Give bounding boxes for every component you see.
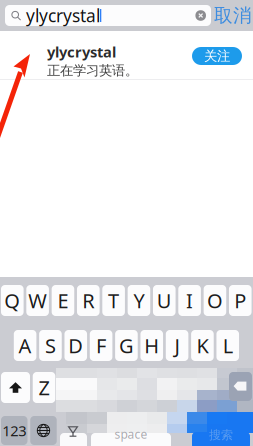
button[interactable]: P	[229, 285, 252, 316]
staticText: D	[68, 332, 83, 359]
staticText: 取消	[214, 4, 252, 27]
staticText: R	[82, 287, 94, 314]
button[interactable]: I	[178, 285, 201, 316]
button[interactable]: L	[216, 330, 239, 361]
button[interactable]: W	[26, 285, 49, 316]
staticText: J	[175, 332, 180, 359]
staticText: S	[45, 332, 56, 359]
button[interactable]: O	[204, 285, 226, 316]
staticText: K	[196, 332, 208, 359]
staticText: Z	[38, 374, 49, 401]
staticText: ylycrystal	[26, 4, 100, 27]
button[interactable]: Shift	[1, 372, 30, 403]
button[interactable]: Next keyboard	[30, 416, 57, 445]
staticText: ylycrystal	[47, 42, 116, 61]
button[interactable]: 123	[1, 416, 27, 445]
staticText: 正在学习英语。	[47, 62, 138, 79]
button[interactable]: T	[102, 285, 125, 316]
staticText: U	[157, 287, 172, 314]
staticText: T	[108, 287, 119, 314]
button[interactable]: J	[166, 330, 188, 361]
staticText: 123	[2, 421, 26, 440]
staticText: A	[19, 332, 32, 359]
staticText: Y	[133, 287, 144, 314]
staticText: space	[114, 426, 147, 442]
staticText: I	[186, 287, 193, 314]
button[interactable]: G	[115, 330, 138, 361]
button[interactable]: 取消	[213, 0, 253, 31]
button[interactable]: H	[140, 330, 163, 361]
staticText: W	[28, 287, 47, 314]
button[interactable]: Z	[33, 372, 55, 403]
staticText: P	[234, 287, 246, 314]
button[interactable]: F	[90, 330, 112, 361]
button[interactable]: S	[39, 330, 62, 361]
button[interactable]: K	[191, 330, 214, 361]
button[interactable]: U	[153, 285, 176, 316]
staticText: G	[119, 332, 134, 359]
staticText: 搜索	[209, 428, 233, 442]
staticText: 关注	[204, 48, 230, 64]
button[interactable]: Q	[1, 285, 24, 316]
staticText: L	[223, 332, 233, 359]
button[interactable]: D	[64, 330, 87, 361]
button[interactable]: Y	[128, 285, 150, 316]
button[interactable]: E	[52, 285, 74, 316]
staticText: E	[57, 287, 68, 314]
staticText: O	[207, 287, 223, 314]
button[interactable]: A	[14, 330, 36, 361]
button[interactable]: Clear search text	[195, 10, 206, 21]
button[interactable]: ylycrystal	[0, 31, 253, 79]
button[interactable]: R	[77, 285, 100, 316]
staticText: Q	[4, 287, 20, 314]
staticText: F	[96, 332, 106, 359]
staticText: H	[144, 332, 159, 359]
